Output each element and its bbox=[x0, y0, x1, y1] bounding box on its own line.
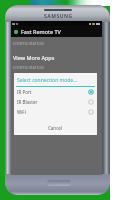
staticText: SAMSUNG bbox=[44, 13, 73, 19]
button[interactable]: Home bbox=[47, 180, 71, 186]
staticText: IR Blaster bbox=[17, 99, 38, 105]
staticText: IR Port bbox=[17, 89, 32, 95]
button[interactable]: Cancel bbox=[42, 124, 69, 132]
staticText: WiFi bbox=[17, 109, 26, 115]
button[interactable]: IR Port bbox=[17, 87, 94, 97]
staticText: Select connection mode... bbox=[17, 77, 78, 84]
staticText: View More Apps bbox=[13, 54, 55, 61]
staticText: CONFIGURATION bbox=[13, 65, 44, 70]
button[interactable]: WiFi bbox=[17, 107, 94, 117]
staticText: Fast Remote TV bbox=[21, 28, 61, 35]
staticText: CONFIGURATION bbox=[13, 41, 44, 46]
button[interactable]: View More Apps bbox=[11, 53, 102, 62]
button[interactable]: IR Blaster bbox=[17, 97, 94, 107]
button[interactable]: Fast Remote TV bbox=[11, 26, 102, 37]
